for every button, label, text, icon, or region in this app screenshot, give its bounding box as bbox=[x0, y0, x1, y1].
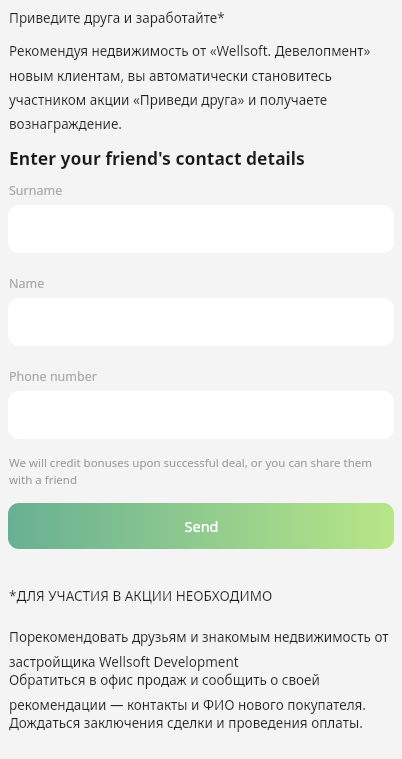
staticText: Порекомендовать друзьям и знакомым недви… bbox=[9, 628, 392, 671]
staticText: Name bbox=[9, 275, 45, 292]
staticText: *ДЛЯ УЧАСТИЯ В АКЦИИ НЕОБХОДИМО bbox=[9, 587, 273, 605]
staticText: Рекомендуя недвижимость от «Wellsoft. Де… bbox=[9, 42, 392, 133]
staticText: Дождаться заключения сделки и проведения… bbox=[9, 714, 363, 732]
staticText: Приведите друга и заработайте* bbox=[9, 9, 225, 27]
staticText: Обратиться в офис продаж и сообщить о св… bbox=[9, 671, 392, 714]
staticText: Surname bbox=[9, 182, 63, 199]
staticText: Send bbox=[184, 516, 219, 536]
staticText: We will credit bonuses upon successful d… bbox=[9, 455, 388, 487]
staticText: Phone number bbox=[9, 368, 97, 385]
staticText: Enter your friend's contact details bbox=[9, 146, 305, 170]
button[interactable]: Send bbox=[8, 503, 394, 549]
